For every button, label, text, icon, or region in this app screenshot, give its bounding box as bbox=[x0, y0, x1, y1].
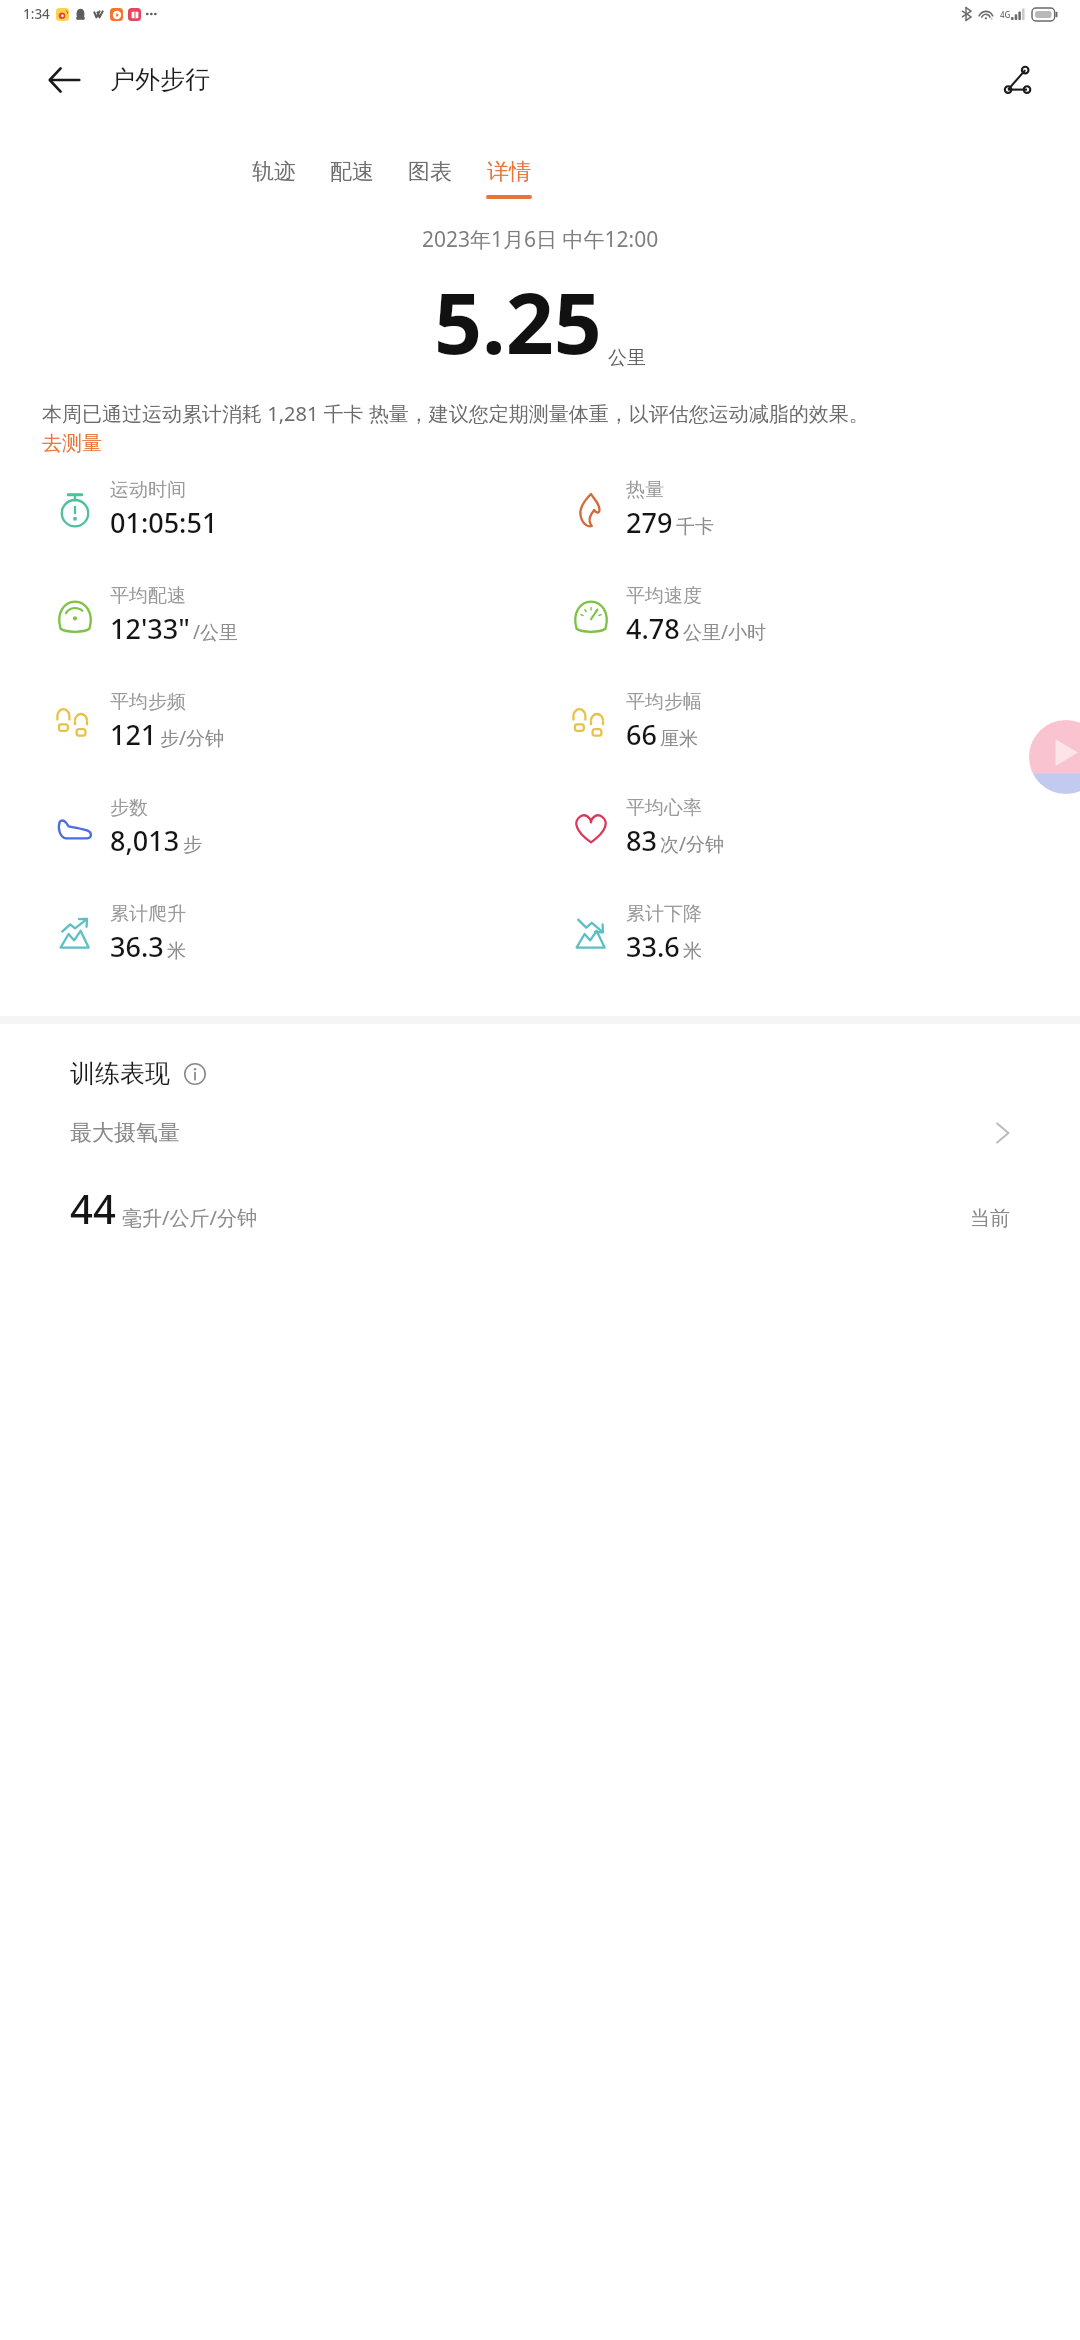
staticText: 平均步幅 bbox=[626, 690, 702, 714]
staticText: 运动时间 bbox=[110, 478, 186, 502]
staticText: 平均心率 bbox=[626, 796, 702, 820]
button[interactable]: 轨迹 bbox=[250, 158, 298, 199]
button[interactable]: 最大摄氧量 bbox=[0, 1119, 1080, 1147]
staticText: 毫升/公斤/分钟 bbox=[122, 1204, 257, 1231]
staticText: 5.25 bbox=[434, 264, 602, 378]
button[interactable]: 平均心率 bbox=[568, 796, 725, 859]
staticText: 最大摄氧量 bbox=[70, 1119, 180, 1147]
button[interactable]: Info bbox=[180, 1059, 210, 1089]
staticText: 配速 bbox=[330, 158, 374, 186]
button[interactable]: 运动时间 bbox=[52, 478, 218, 541]
button[interactable]: 累计下降 bbox=[568, 902, 702, 965]
staticText: 2023年1月6日 中午12:00 bbox=[422, 225, 659, 254]
staticText: 图表 bbox=[408, 158, 452, 186]
staticText: 44 bbox=[70, 1181, 116, 1235]
staticText: 33.6 bbox=[626, 928, 680, 965]
staticText: 轨迹 bbox=[252, 158, 296, 186]
staticText: /公里 bbox=[193, 619, 239, 645]
staticText: 步 bbox=[183, 833, 202, 857]
staticText: 公里 bbox=[608, 346, 646, 370]
button[interactable]: Floating app shortcut bbox=[1024, 715, 1080, 799]
staticText: 厘米 bbox=[660, 727, 698, 751]
staticText: 训练表现 bbox=[70, 1058, 170, 1089]
staticText: 去测量 bbox=[42, 431, 102, 456]
button[interactable]: 平均步幅 bbox=[568, 690, 702, 753]
staticText: 详情 bbox=[487, 158, 531, 186]
staticText: 平均配速 bbox=[110, 584, 186, 608]
button[interactable]: 平均配速 bbox=[52, 584, 239, 647]
staticText: 01:05:51 bbox=[110, 504, 218, 541]
button[interactable]: 累计爬升 bbox=[52, 902, 186, 965]
staticText: 平均步频 bbox=[110, 690, 186, 714]
staticText: 1:34 bbox=[23, 5, 50, 23]
staticText: 千卡 bbox=[676, 515, 714, 539]
staticText: 83 bbox=[626, 822, 657, 859]
button[interactable]: 热量 bbox=[568, 478, 714, 541]
staticText: 累计下降 bbox=[626, 902, 702, 926]
button[interactable]: 去测量 bbox=[42, 431, 102, 456]
staticText: 户外步行 bbox=[110, 64, 210, 95]
staticText: 279 bbox=[626, 504, 673, 541]
staticText: 公里/小时 bbox=[683, 619, 767, 645]
staticText: 热量 bbox=[626, 478, 664, 502]
staticText: 8,013 bbox=[110, 822, 180, 859]
staticText: 66 bbox=[626, 716, 657, 753]
button[interactable]: Back bbox=[38, 54, 90, 106]
button[interactable]: 图表 bbox=[406, 158, 454, 199]
button[interactable]: 步数 bbox=[52, 796, 202, 859]
button[interactable]: 平均速度 bbox=[568, 584, 767, 647]
button[interactable]: 配速 bbox=[328, 158, 376, 199]
staticText: 累计爬升 bbox=[110, 902, 186, 926]
staticText: 米 bbox=[167, 939, 186, 963]
staticText: 米 bbox=[683, 939, 702, 963]
staticText: 121 bbox=[110, 716, 157, 753]
staticText: 36.3 bbox=[110, 928, 164, 965]
staticText: 步/分钟 bbox=[160, 725, 225, 751]
button[interactable]: Share bbox=[992, 54, 1044, 106]
staticText: 步数 bbox=[110, 796, 148, 820]
staticText: 当前 bbox=[970, 1206, 1010, 1231]
staticText: 4G bbox=[1000, 9, 1011, 20]
button[interactable]: 详情 bbox=[484, 158, 534, 199]
staticText: 12'33" bbox=[110, 610, 190, 647]
staticText: 平均速度 bbox=[626, 584, 702, 608]
staticText: 4.78 bbox=[626, 610, 680, 647]
staticText: 次/分钟 bbox=[660, 831, 725, 857]
staticText: 本周已通过运动累计消耗 1,281 千卡 热量，建议您定期测量体重，以评估您运动… bbox=[42, 400, 869, 427]
button[interactable]: 平均步频 bbox=[52, 690, 225, 753]
